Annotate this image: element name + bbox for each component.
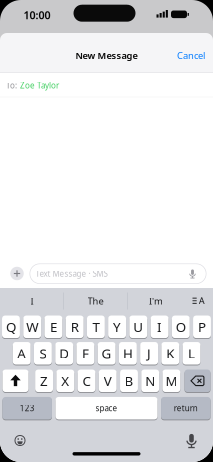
button[interactable]: Z — [35, 369, 53, 393]
staticText: return — [174, 403, 198, 413]
button[interactable]: O — [172, 315, 190, 339]
staticText: G — [102, 344, 112, 362]
button[interactable]: X — [56, 369, 74, 393]
staticText: L — [188, 344, 195, 362]
staticText: D — [59, 344, 69, 362]
button[interactable]: V — [99, 369, 117, 393]
staticText: I'm — [149, 295, 163, 307]
button[interactable]: R — [66, 315, 84, 339]
button[interactable]: A — [13, 342, 31, 365]
staticText: P — [198, 318, 206, 336]
button[interactable]: K — [161, 342, 179, 365]
button[interactable]: C — [77, 369, 95, 393]
button[interactable]: L — [183, 342, 200, 365]
staticText: New Message — [75, 49, 137, 62]
staticText: To: — [6, 80, 17, 91]
staticText: Z — [40, 372, 48, 390]
button[interactable]: H — [119, 342, 137, 365]
button[interactable]: Dictation — [183, 432, 199, 450]
button[interactable]: Delete — [184, 369, 210, 393]
button[interactable]: N — [141, 369, 159, 393]
staticText: Text Message · SMS — [35, 268, 107, 279]
staticText: Cancel — [177, 49, 205, 62]
button[interactable]: M — [162, 369, 180, 393]
staticText: O — [176, 318, 186, 336]
staticText: Q — [6, 318, 16, 336]
staticText: Zoe Taylor — [20, 80, 59, 91]
button[interactable]: S — [34, 342, 52, 365]
staticText: The — [87, 295, 103, 307]
staticText: B — [124, 372, 133, 390]
button[interactable]: W — [23, 315, 41, 339]
button[interactable]: I — [151, 315, 169, 339]
staticText: A — [199, 294, 205, 307]
button[interactable]: The — [87, 295, 103, 307]
staticText: U — [133, 318, 143, 336]
staticText: T — [92, 318, 99, 336]
staticText: F — [82, 344, 89, 362]
staticText: V — [104, 372, 112, 390]
button[interactable]: B — [120, 369, 138, 393]
button[interactable]: D — [55, 342, 73, 365]
button[interactable]: Text Message — [29, 263, 206, 284]
staticText: space — [95, 403, 117, 413]
button[interactable]: space — [55, 396, 157, 420]
button[interactable]: G — [98, 342, 115, 365]
button[interactable]: Cancel — [177, 49, 205, 62]
button[interactable]: Add attachment — [10, 267, 24, 280]
button[interactable]: Q — [2, 315, 20, 339]
staticText: N — [145, 372, 155, 390]
staticText: S — [39, 344, 46, 362]
staticText: E — [50, 318, 57, 336]
staticText: M — [165, 372, 177, 390]
button[interactable]: P — [193, 315, 211, 339]
button[interactable]: E — [44, 315, 62, 339]
button[interactable]: 123 — [2, 396, 52, 420]
staticText: 123 — [20, 403, 35, 413]
button[interactable]: Predictive text — [192, 294, 205, 307]
staticText: H — [123, 344, 133, 362]
button[interactable]: I'm — [149, 295, 163, 307]
button[interactable]: Y — [108, 315, 126, 339]
staticText: A — [17, 344, 26, 362]
button[interactable]: U — [129, 315, 147, 339]
staticText: 10:00 — [23, 8, 50, 22]
button[interactable]: T — [87, 315, 105, 339]
button[interactable]: Shift — [2, 369, 28, 393]
staticText: R — [71, 318, 79, 336]
button[interactable]: F — [76, 342, 94, 365]
staticText: K — [166, 344, 174, 362]
staticText: C — [82, 372, 90, 390]
button[interactable]: return — [161, 396, 211, 420]
button[interactable]: To: — [6, 75, 207, 95]
staticText: W — [26, 318, 38, 336]
staticText: J — [147, 344, 151, 362]
button[interactable]: Dictate — [186, 267, 198, 280]
button[interactable]: I — [30, 295, 33, 307]
staticText: I — [157, 318, 162, 336]
button[interactable]: Emoji — [14, 435, 25, 446]
staticText: X — [61, 372, 69, 390]
staticText: I — [30, 295, 33, 307]
button[interactable]: J — [140, 342, 158, 365]
staticText: Y — [113, 318, 121, 336]
